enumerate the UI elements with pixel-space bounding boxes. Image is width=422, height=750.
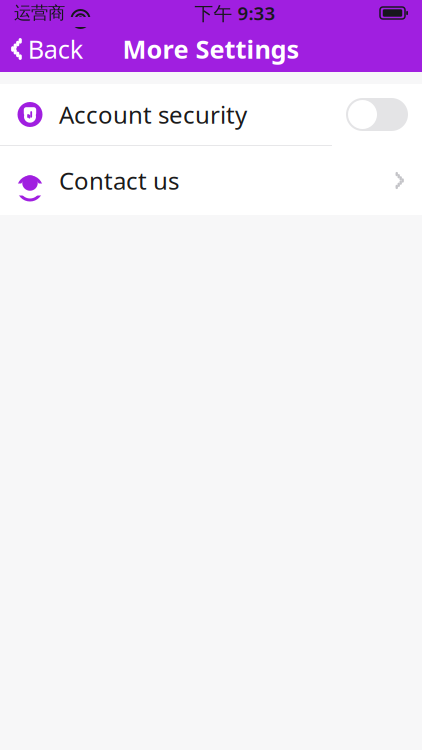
button[interactable]: Contact us	[0, 146, 422, 215]
staticText: 下午 9:33	[194, 1, 275, 25]
staticText: Back	[28, 32, 84, 66]
staticText: 运营商	[14, 2, 65, 24]
staticText: Account security	[59, 99, 247, 130]
staticText: Contact us	[59, 165, 179, 196]
button[interactable]: Back	[0, 27, 96, 71]
staticText: More Settings	[122, 32, 299, 66]
button[interactable]: Account security	[0, 84, 422, 145]
